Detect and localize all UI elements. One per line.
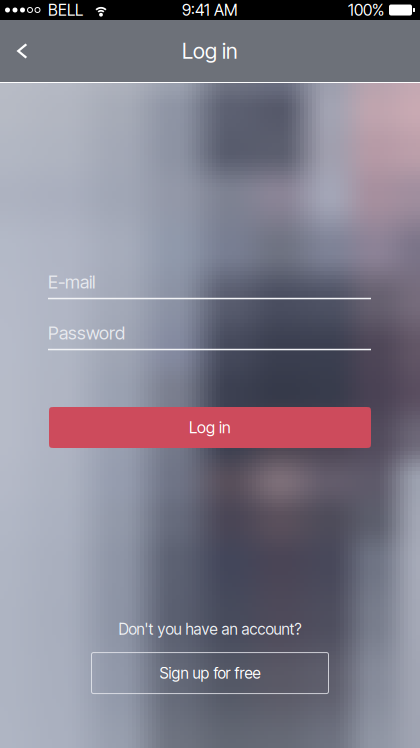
staticText: Don't you have an account? (118, 620, 301, 639)
staticText: BELL (48, 0, 83, 20)
staticText: 100% (348, 0, 384, 20)
staticText: Password (48, 322, 125, 344)
button[interactable]: Log in (49, 407, 371, 448)
staticText: Log in (189, 418, 231, 437)
button[interactable]: Sign up for free (91, 653, 328, 694)
staticText: Sign up for free (159, 664, 260, 682)
staticText: 9:41 AM (182, 0, 238, 20)
staticText: Log in (182, 38, 238, 64)
staticText: E-mail (48, 271, 95, 293)
button[interactable]: Back (0, 29, 44, 73)
